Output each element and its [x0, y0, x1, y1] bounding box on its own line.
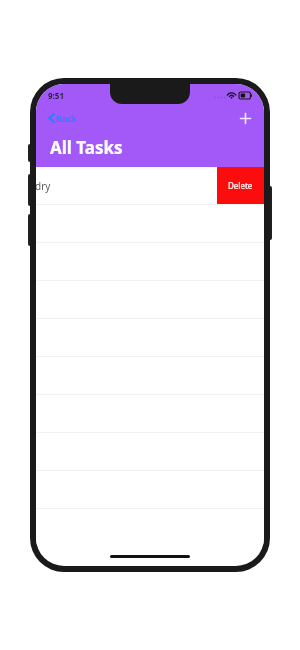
staticText: All Tasks [50, 136, 123, 159]
button[interactable]: dry [36, 167, 264, 204]
button[interactable]: Back [46, 110, 80, 126]
button[interactable]: Add task [236, 109, 254, 127]
button[interactable] [36, 508, 264, 546]
staticText: dry [36, 179, 51, 193]
button[interactable]: Delete [217, 167, 264, 204]
staticText: Back [56, 112, 78, 124]
staticText: 9:51 [48, 90, 64, 101]
staticText: Delete [228, 180, 253, 191]
